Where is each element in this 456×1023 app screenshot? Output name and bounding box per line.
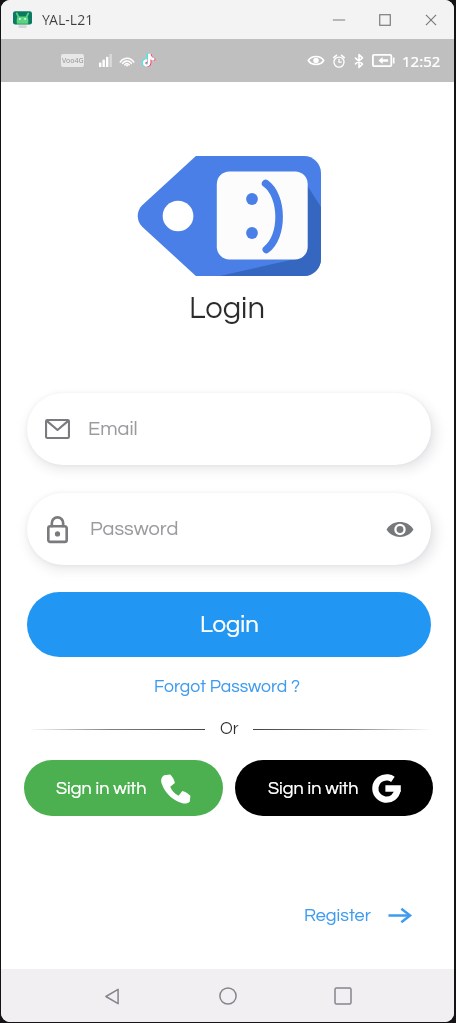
- staticText: YAL-L21: [42, 10, 94, 29]
- staticText: 12:52: [402, 51, 441, 71]
- staticText: Voo4G: [62, 56, 84, 66]
- button[interactable]: Password: [27, 493, 431, 565]
- button[interactable]: Sign in with: [24, 760, 223, 816]
- staticText: Password: [90, 519, 179, 540]
- staticText: Email: [88, 419, 138, 440]
- staticText: Login: [200, 612, 259, 637]
- button[interactable]: Email: [27, 393, 431, 465]
- button[interactable]: Sign in with: [235, 760, 433, 816]
- button[interactable]: Forgot Password ?: [146, 674, 309, 700]
- button[interactable]: Home: [205, 973, 251, 1019]
- button[interactable]: Back: [89, 973, 135, 1019]
- button[interactable]: Recents: [320, 973, 366, 1019]
- staticText: Sign in with: [56, 779, 147, 798]
- button[interactable]: Minimize: [316, 0, 362, 39]
- button[interactable]: Register: [296, 898, 419, 933]
- staticText: Or: [220, 720, 239, 738]
- button[interactable]: Maximize: [362, 0, 408, 39]
- staticText: Login: [189, 293, 266, 325]
- button[interactable]: Show password: [383, 512, 417, 546]
- button[interactable]: Login: [27, 592, 431, 657]
- staticText: Forgot Password ?: [154, 678, 301, 696]
- button[interactable]: Close: [408, 0, 454, 39]
- staticText: Register: [304, 906, 371, 925]
- staticText: Sign in with: [268, 779, 359, 798]
